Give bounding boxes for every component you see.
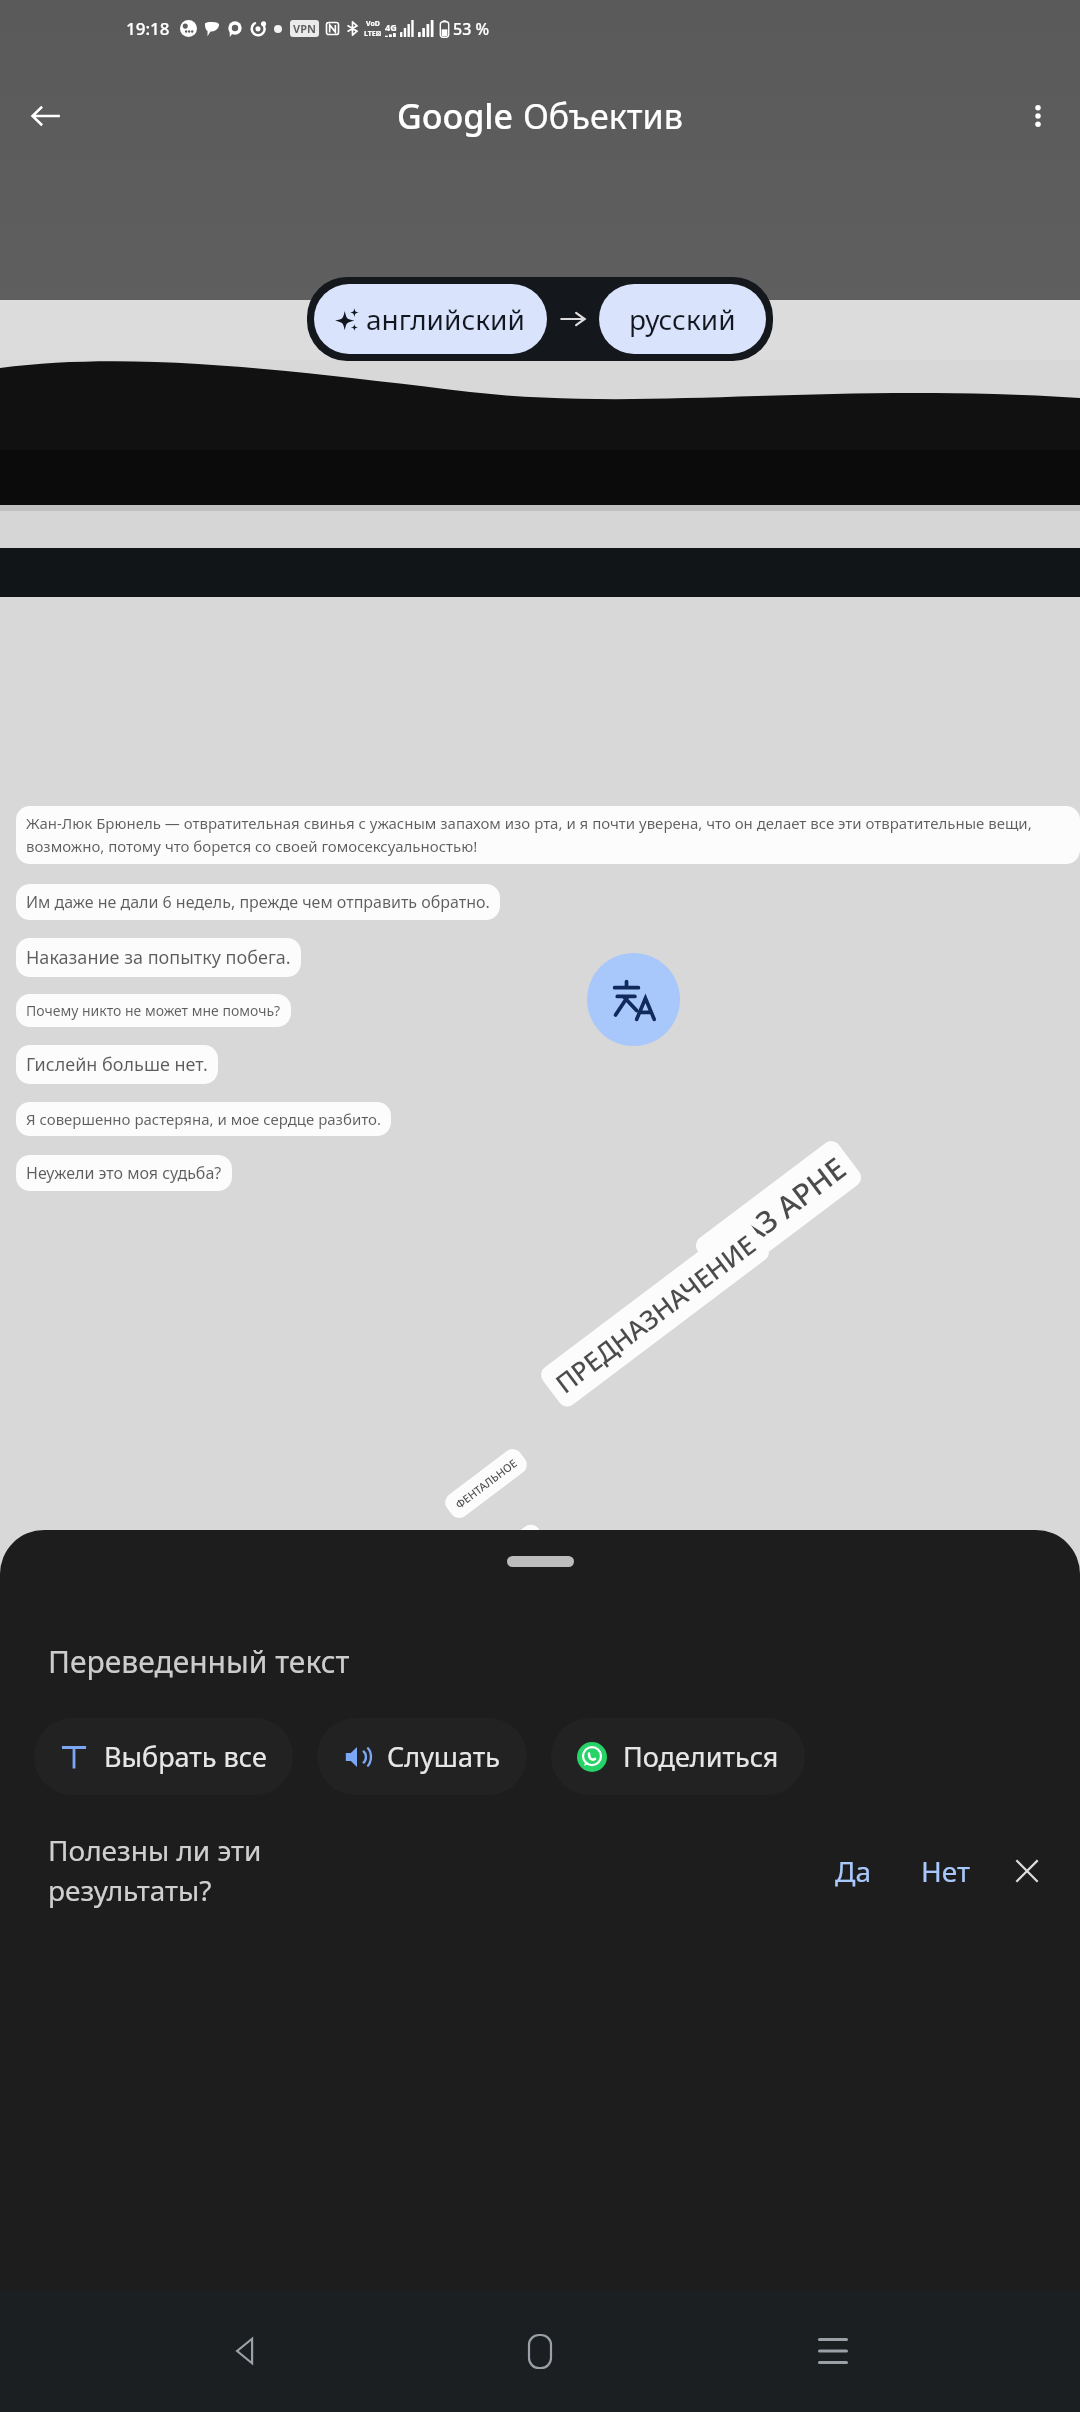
- staticText: Им даже не дали 6 недель, прежде чем отп…: [26, 891, 490, 913]
- button[interactable]: Я совершенно растеряна, и мое сердце раз…: [16, 1102, 391, 1136]
- staticText: Слушать: [387, 1738, 501, 1775]
- button[interactable]: Выбрать все: [34, 1718, 293, 1795]
- staticText: русский: [629, 300, 736, 338]
- staticText: Наказание за попытку побега.: [26, 945, 291, 970]
- staticText: VPN: [293, 21, 316, 36]
- staticText: Переведенный текст: [48, 1641, 350, 1682]
- button[interactable]: Поделиться: [551, 1718, 805, 1795]
- button[interactable]: Наказание за попытку побега.: [16, 938, 301, 977]
- button[interactable]: Гислейн больше нет.: [16, 1045, 218, 1084]
- staticText: Я совершенно растеряна, и мое сердце раз…: [26, 1109, 381, 1129]
- staticText: Нет: [921, 1852, 970, 1890]
- staticText: Да: [835, 1852, 871, 1890]
- staticText: 53 %: [453, 18, 490, 40]
- staticText: EFTA: [656, 324, 690, 344]
- button[interactable]: Нет: [909, 1844, 982, 1898]
- staticText: Неужели это моя судьба?: [26, 1162, 222, 1184]
- button[interactable]: Последние приложения: [788, 2306, 878, 2396]
- button[interactable]: Жан-Люк Брюнель — отвратительная свинья …: [16, 806, 1080, 864]
- button[interactable]: ФЕНТАЛЬНОЕ: [441, 1445, 531, 1522]
- button[interactable]: ГЛАЗ АРНЕ: [692, 1137, 865, 1286]
- button[interactable]: английский: [314, 284, 547, 354]
- button[interactable]: Да: [823, 1844, 883, 1898]
- button[interactable]: Почему никто не может мне помочь?: [16, 994, 291, 1027]
- staticText: Почему никто не может мне помочь?: [26, 1001, 281, 1020]
- button[interactable]: Им даже не дали 6 недель, прежде чем отп…: [16, 884, 500, 920]
- button[interactable]: Слушать: [317, 1718, 527, 1795]
- staticText: Жан-Люк Брюнель — отвратительная свинья …: [26, 813, 1070, 857]
- button[interactable]: русский: [599, 284, 766, 354]
- staticText: ГЛАЗ АРНЕ: [703, 1147, 854, 1276]
- staticText: 4G: [385, 21, 397, 33]
- button[interactable]: Перевести: [587, 953, 680, 1046]
- button[interactable]: Ещё: [1012, 90, 1064, 142]
- button[interactable]: ДЛЯ: [467, 1521, 565, 1612]
- staticText: ПРЕДНАЗНАЧЕНИЕ: [548, 1227, 762, 1400]
- staticText: VoD: [366, 19, 380, 29]
- button[interactable]: ПРЕДНАЗНАЧЕНИЕ: [537, 1216, 773, 1410]
- staticText: Поделиться: [623, 1738, 779, 1775]
- staticText: Гислейн больше нет.: [26, 1052, 208, 1077]
- staticText: Объектив: [523, 93, 683, 139]
- button[interactable]: Назад: [203, 2306, 293, 2396]
- staticText: LTE⊠: [364, 29, 382, 39]
- staticText: Google: [397, 93, 514, 139]
- staticText: ФЕНТАЛЬНОЕ: [452, 1455, 520, 1512]
- button[interactable]: Главный экран: [495, 2306, 585, 2396]
- staticText: Полезны ли эти результаты?: [48, 1831, 262, 1910]
- staticText: 19:18: [126, 17, 170, 40]
- staticText: ДЛЯ: [478, 1531, 554, 1602]
- staticText: Выбрать все: [104, 1738, 267, 1775]
- button[interactable]: Назад: [18, 88, 74, 144]
- button[interactable]: Неужели это моя судьба?: [16, 1155, 232, 1191]
- staticText: английский: [366, 300, 525, 338]
- button[interactable]: Закрыть: [1004, 1848, 1050, 1894]
